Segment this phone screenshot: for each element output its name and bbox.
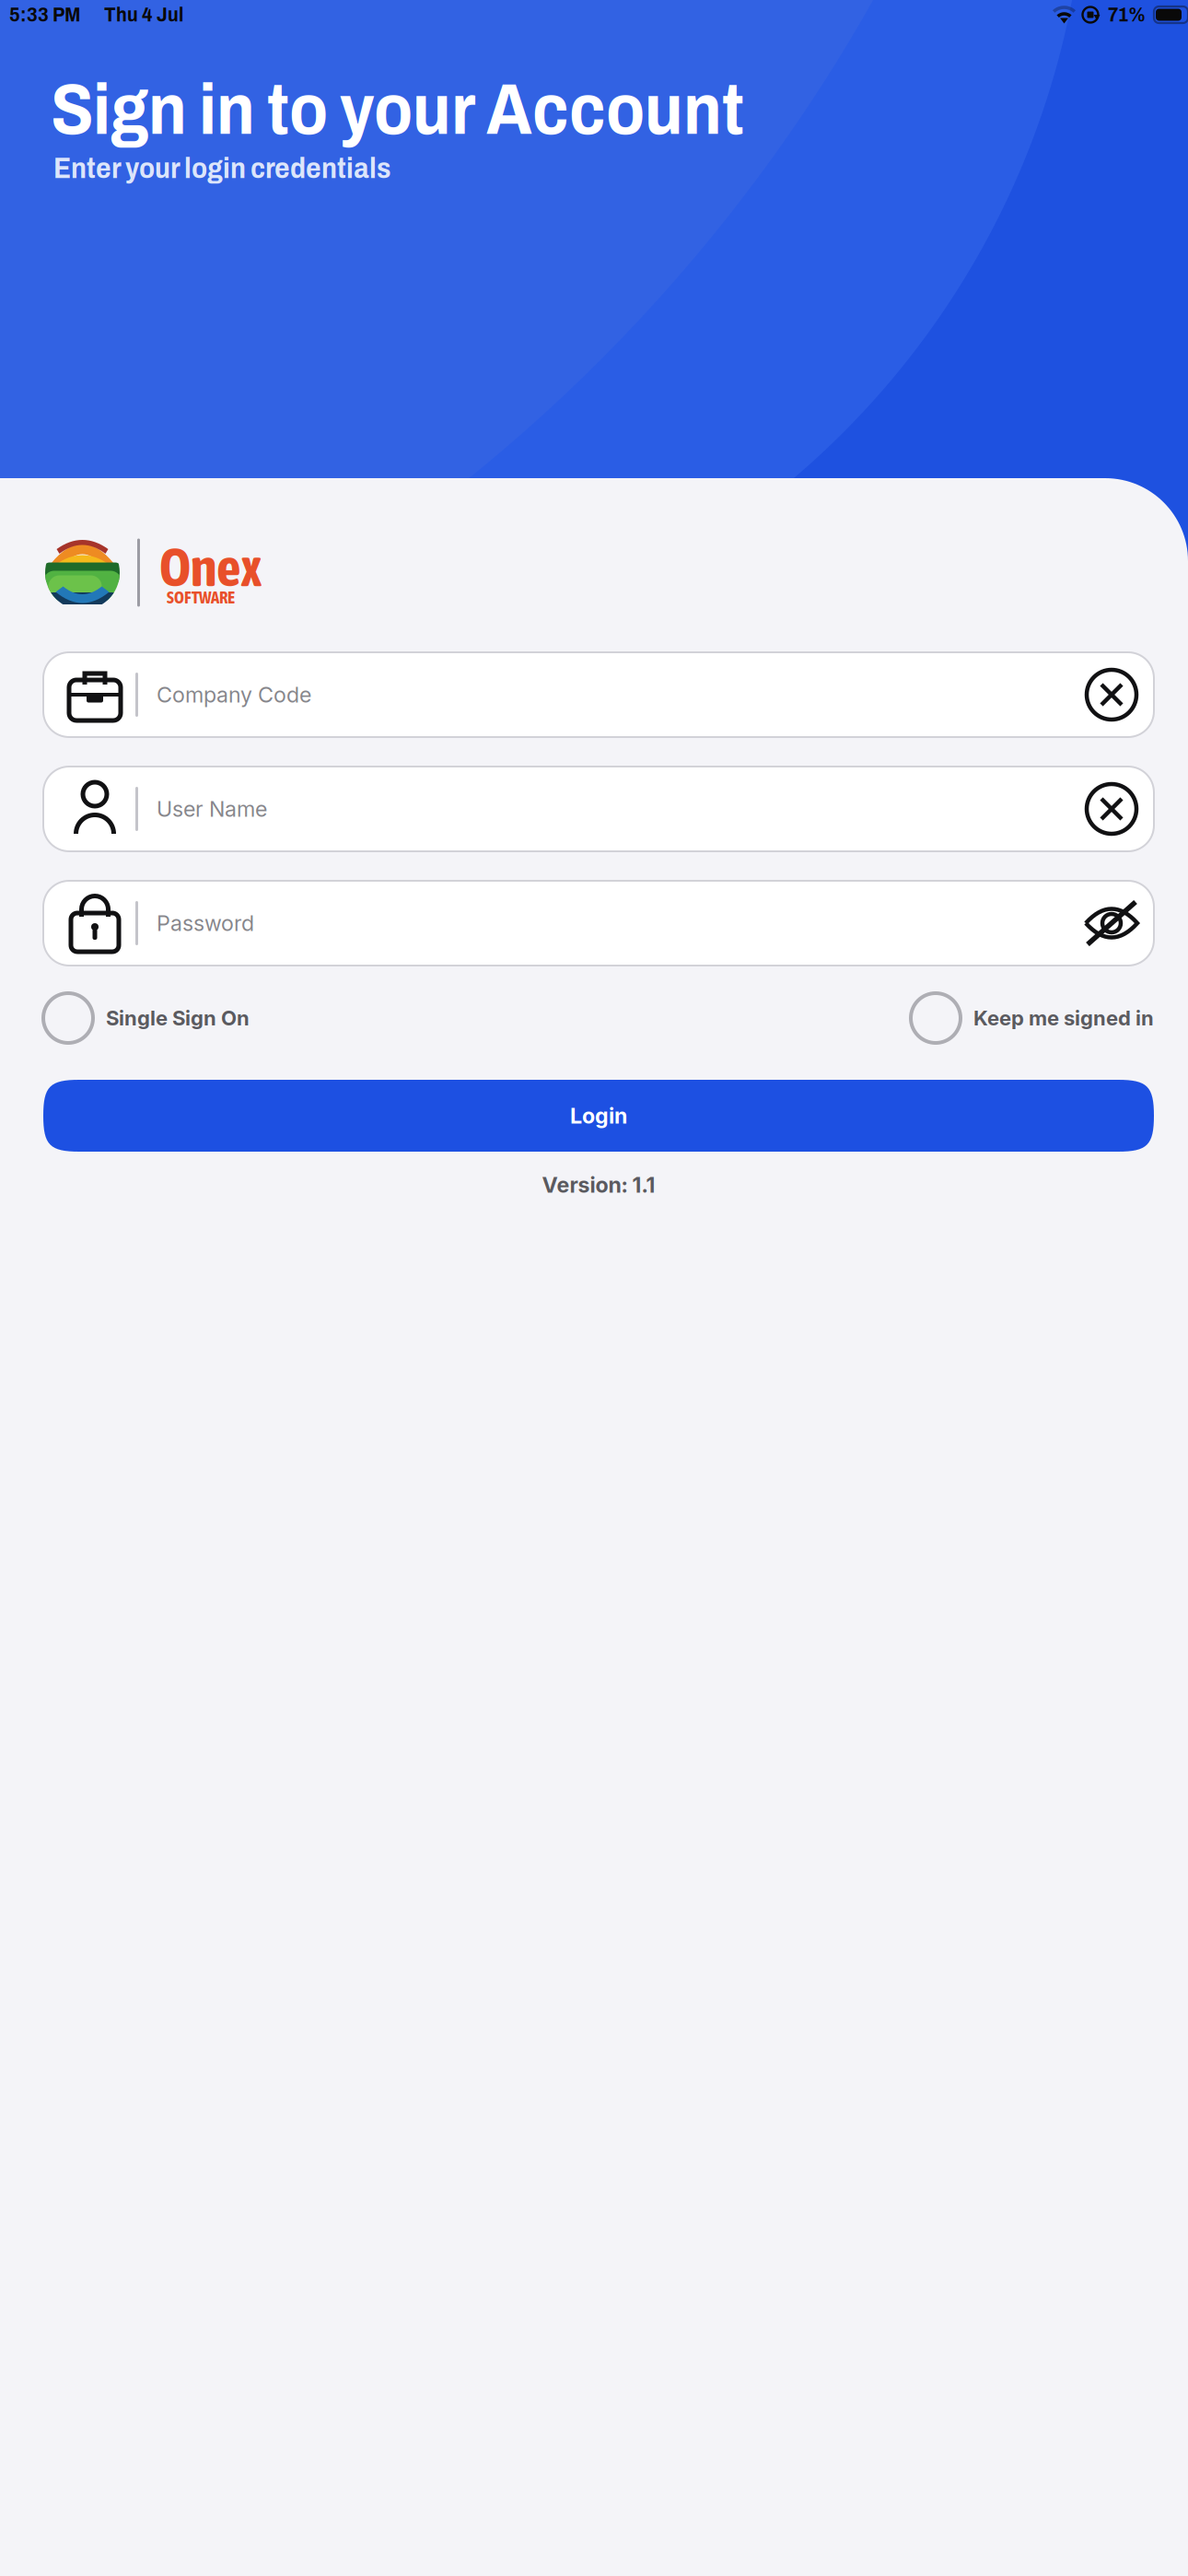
staticText: Enter your login credentials — [53, 153, 390, 184]
staticText: Sign in to your Account — [51, 71, 744, 149]
button[interactable]: Keep me signed in — [911, 988, 1154, 1048]
staticText: User Name — [157, 796, 267, 822]
staticText: 5:33 PM — [9, 4, 81, 26]
button[interactable]: Clear user name — [1069, 767, 1154, 851]
button[interactable]: Single Sign On — [43, 988, 250, 1048]
staticText: Company Code — [157, 682, 311, 708]
staticText: Password — [157, 910, 254, 936]
button[interactable]: Login — [43, 1080, 1154, 1152]
staticText: Single Sign On — [106, 1006, 250, 1030]
staticText: SOFTWARE — [167, 587, 235, 607]
staticText: 71% — [1108, 4, 1146, 26]
staticText: Login — [570, 1103, 627, 1129]
staticText: Onex — [159, 536, 262, 598]
staticText: Thu 4 Jul — [104, 4, 183, 26]
staticText: Version: 1.1 — [542, 1172, 655, 1198]
staticText: Keep me signed in — [973, 1006, 1154, 1030]
button[interactable]: Clear company code — [1069, 652, 1154, 737]
button[interactable]: Show password — [1069, 881, 1154, 966]
